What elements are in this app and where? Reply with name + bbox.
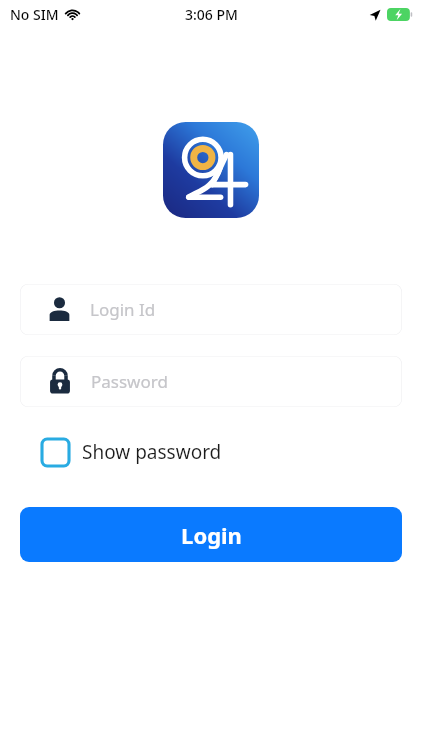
button[interactable]: Password [20,356,402,407]
staticText: No SIM [10,5,59,24]
staticText: Login Id [90,298,156,321]
button[interactable]: Show password [20,430,236,474]
other: App logo [163,122,259,218]
button[interactable]: Login [20,507,402,562]
staticText: Login [181,520,242,550]
staticText: Password [91,370,168,393]
button[interactable]: Login Id [20,284,402,335]
staticText: Show password [82,439,222,465]
staticText: 3:06 PM [185,5,238,24]
